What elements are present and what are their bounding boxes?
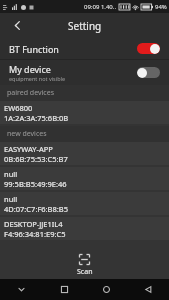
button[interactable]: BT Function xyxy=(0,38,169,59)
staticText: 09:09 1.40.. xyxy=(84,3,117,11)
other: Scan xyxy=(79,254,90,265)
staticText: Scan xyxy=(77,267,93,277)
button[interactable]: Recent apps xyxy=(43,279,85,300)
button[interactable]: EASYWAY-APP xyxy=(0,142,169,165)
button[interactable]: Off xyxy=(137,67,160,78)
button[interactable]: On xyxy=(137,43,160,54)
staticText: F4:96:34:81:E9:C5 xyxy=(4,229,66,239)
button[interactable]: Back xyxy=(0,13,34,38)
staticText: Setting xyxy=(68,19,102,33)
staticText: equipment not visible xyxy=(9,75,66,82)
staticText: 94% xyxy=(155,3,167,11)
staticText: 1A:2A:3A:75:6B:0B xyxy=(4,113,69,123)
button[interactable]: EW6800 xyxy=(0,101,169,124)
button[interactable]: Home xyxy=(85,279,127,300)
staticText: BT Function xyxy=(9,43,59,55)
button[interactable]: My device xyxy=(0,60,169,85)
button[interactable]: Scan xyxy=(0,252,169,279)
staticText: new devices xyxy=(7,129,47,139)
staticText: EW6800 xyxy=(4,103,33,113)
button[interactable]: null xyxy=(0,192,169,215)
staticText: paired devices xyxy=(7,88,54,98)
staticText: null xyxy=(4,194,18,204)
staticText: My device xyxy=(9,63,51,75)
staticText: null xyxy=(4,169,18,179)
staticText: 99:5B:B5:49:9E:46 xyxy=(4,179,67,189)
staticText: 4D:07:C7:F6:B8:B5 xyxy=(4,204,68,214)
staticText: DESKTOP-JJE1IL4 xyxy=(4,219,63,229)
button[interactable]: Back xyxy=(127,279,169,300)
button[interactable]: null xyxy=(0,167,169,190)
button[interactable]: Hide keyboard xyxy=(0,279,43,300)
button[interactable]: DESKTOP-JJE1IL4 xyxy=(0,217,169,240)
staticText: 0B:6B:75:53:C5:B7 xyxy=(4,154,68,164)
staticText: EASYWAY-APP xyxy=(4,144,53,154)
